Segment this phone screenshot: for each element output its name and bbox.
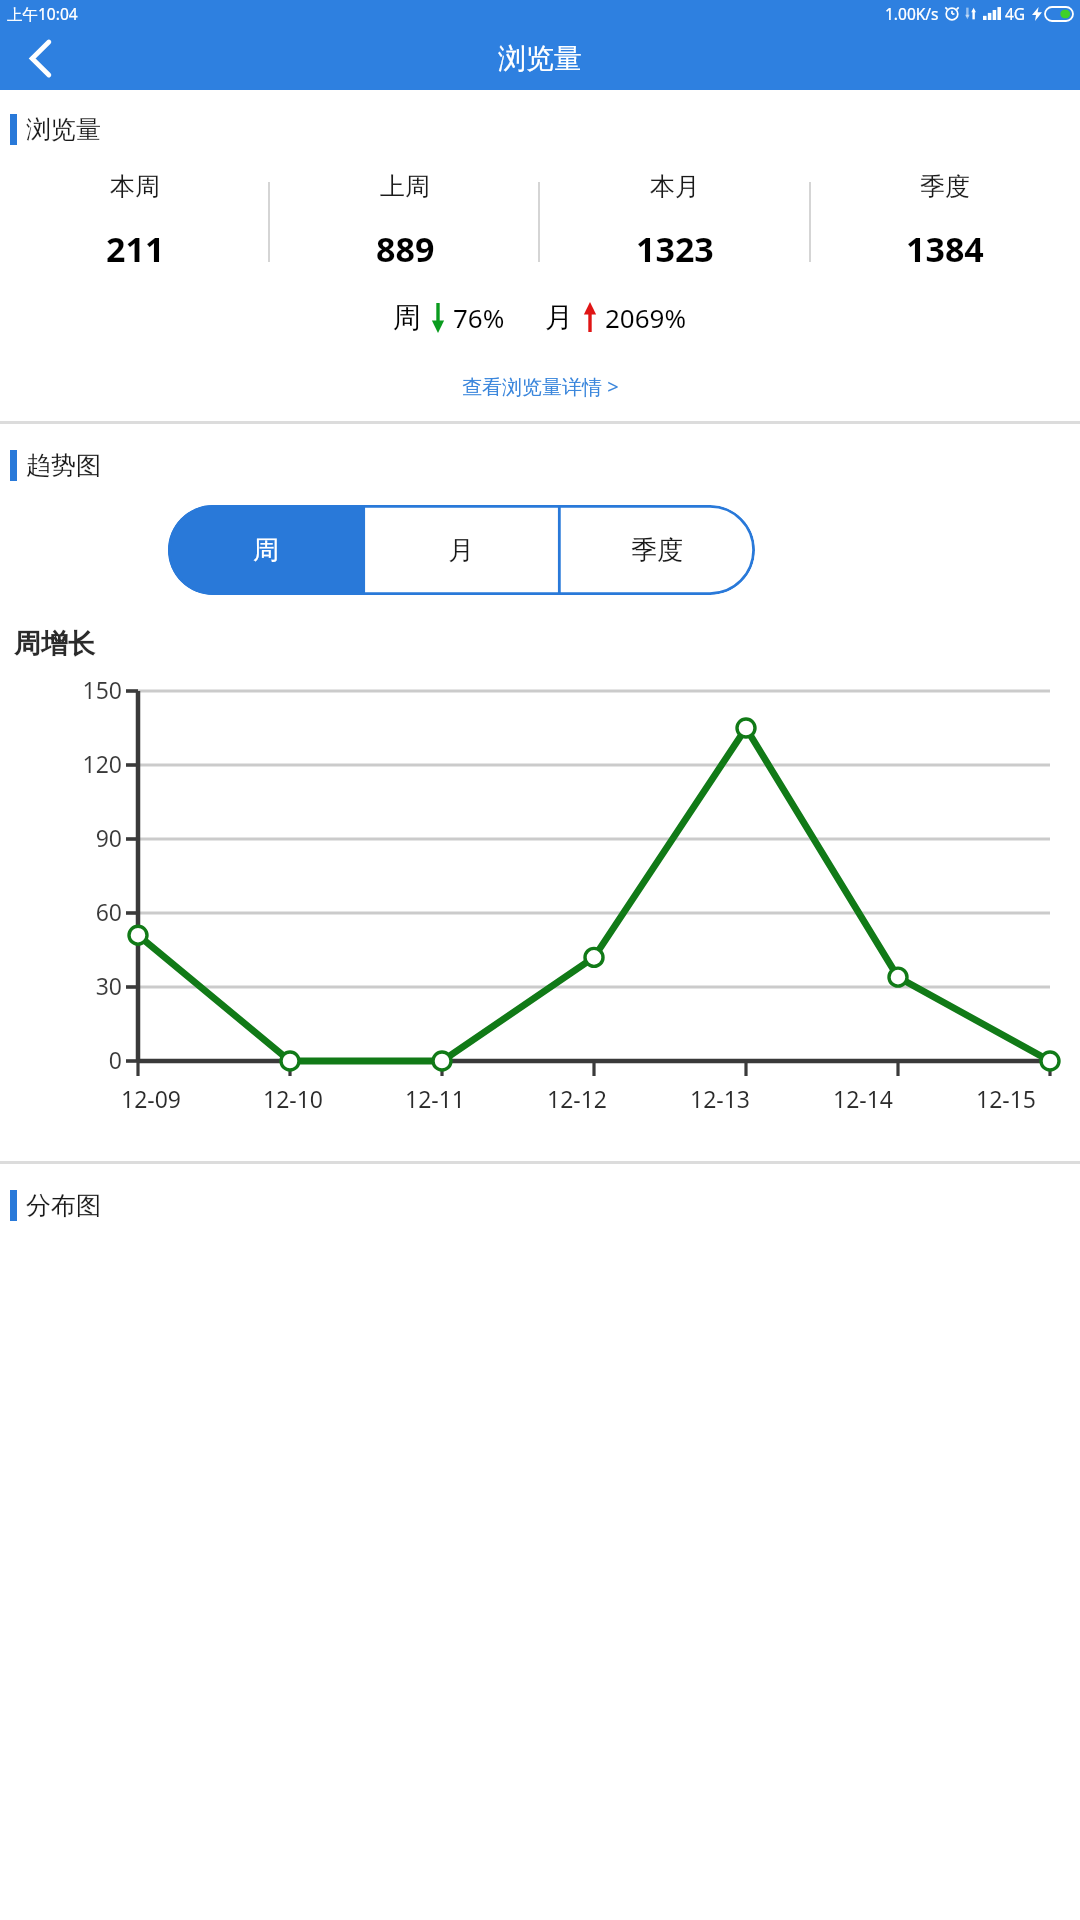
staticText: 1384	[906, 226, 984, 272]
button[interactable]: 月	[363, 505, 559, 595]
button[interactable]: 周	[168, 505, 363, 595]
staticText: 查看浏览量详情 >	[462, 373, 619, 400]
staticText: 150	[0, 674, 122, 705]
staticText: 12-12	[547, 1083, 608, 1114]
staticText: 上午10:04	[7, 3, 78, 24]
staticText: 12-10	[263, 1083, 324, 1114]
staticText: 889	[376, 226, 435, 272]
staticText: 76%	[453, 300, 505, 335]
staticText: 60	[0, 896, 122, 927]
staticText: 月	[448, 534, 474, 567]
staticText: 月	[545, 300, 573, 335]
staticText: 周	[393, 300, 421, 335]
staticText: 上周	[380, 171, 430, 202]
button[interactable]: Back	[0, 26, 80, 90]
staticText: 12-15	[976, 1083, 1037, 1114]
staticText: 211	[106, 226, 165, 272]
staticText: 2069%	[605, 300, 687, 335]
button[interactable]: 查看浏览量详情 >	[0, 359, 1080, 413]
staticText: 12-09	[121, 1083, 182, 1114]
staticText: 120	[0, 748, 122, 779]
staticText: 30	[0, 970, 122, 1001]
staticText: 12-13	[690, 1083, 751, 1114]
staticText: 本周	[110, 171, 160, 202]
staticText: 季度	[631, 534, 683, 567]
staticText: 4G	[1005, 3, 1026, 24]
staticText: 12-11	[405, 1083, 466, 1114]
staticText: 周	[253, 534, 279, 567]
staticText: 本月	[650, 171, 700, 202]
staticText: 季度	[920, 171, 970, 202]
button[interactable]: 季度	[559, 505, 755, 595]
staticText: 90	[0, 822, 122, 853]
staticText: 0	[0, 1044, 122, 1075]
staticText: 趋势图	[26, 450, 101, 481]
staticText: 1.00K/s	[885, 3, 939, 24]
staticText: 1323	[636, 226, 714, 272]
staticText: 12-14	[833, 1083, 894, 1114]
staticText: 浏览量	[498, 41, 582, 76]
staticText: 周增长	[14, 627, 95, 661]
staticText: 浏览量	[26, 114, 101, 145]
staticText: 分布图	[26, 1190, 101, 1221]
